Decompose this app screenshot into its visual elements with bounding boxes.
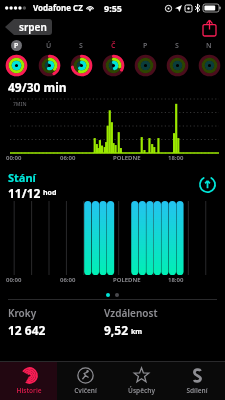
button[interactable]: Ú [33,39,65,52]
button[interactable]: N [193,39,225,52]
button[interactable]: S [65,39,97,52]
staticText: 49/30 min [8,79,67,95]
staticText: srpen [19,20,47,34]
staticText: hod [43,188,57,198]
staticText: Ú [46,41,52,51]
staticText: Úspěchy [128,386,155,395]
staticText: Stání [8,170,36,185]
staticText: Vzdálenost [104,306,158,320]
staticText: 06:00 [60,276,76,284]
button[interactable]: Sdílení [169,362,225,400]
staticText: 11/12 [8,185,41,199]
staticText: 9:55 [104,2,122,14]
staticText: Vodafone CZ [33,2,83,13]
staticText: 7MIN [13,101,27,108]
staticText: 06:00 [60,154,76,162]
button[interactable]: Č [97,39,129,52]
staticText: Sdílení [186,386,208,395]
staticText: 00:00 [6,276,22,284]
staticText: S [79,41,83,51]
staticText: km [131,327,143,337]
staticText: 18:00 [168,154,184,162]
staticText: P [14,41,19,51]
button[interactable]: Cvičení [57,362,113,400]
button[interactable]: P [0,39,33,52]
button[interactable]: Historie [0,362,57,400]
staticText: POLEDNE [113,154,141,162]
button[interactable]: S [161,39,193,52]
staticText: N [206,41,212,51]
staticText: 9,52 [104,322,129,338]
button[interactable]: Sdílet [199,17,219,37]
staticText: 12 642 [8,322,46,338]
staticText: Kroky [8,306,37,320]
staticText: POLEDNE [113,276,141,284]
button[interactable]: Úspěchy [113,362,169,400]
staticText: Cvičení [74,386,97,395]
staticText: Č [111,41,116,51]
staticText: S [175,41,179,51]
button[interactable]: Stání [197,174,217,194]
staticText: Historie [16,386,42,395]
staticText: P [143,41,148,51]
staticText: 18:00 [168,276,184,284]
button[interactable]: P [129,39,161,52]
staticText: 00:00 [6,154,22,162]
button[interactable]: srpen [3,17,54,37]
